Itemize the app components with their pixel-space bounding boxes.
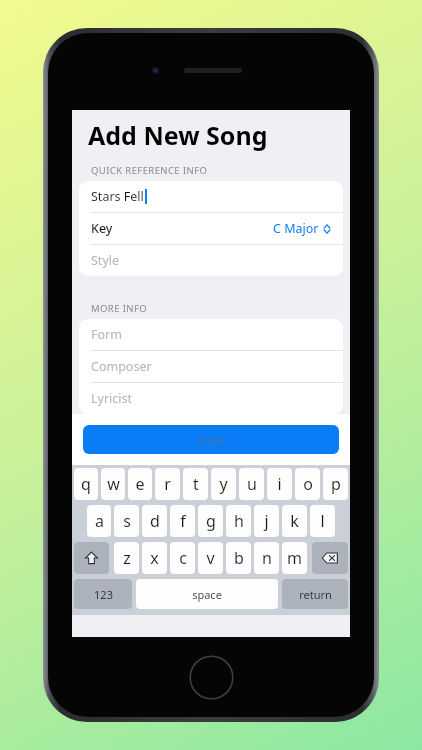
staticText: y <box>219 473 228 495</box>
button[interactable]: 123 <box>74 579 132 609</box>
button[interactable]: Shift <box>74 542 109 574</box>
button[interactable]: l <box>310 505 335 537</box>
button[interactable]: p <box>323 468 348 500</box>
staticText: u <box>247 473 257 495</box>
button[interactable]: g <box>198 505 223 537</box>
staticText: v <box>206 547 215 569</box>
button[interactable]: Style <box>79 245 343 276</box>
staticText: Stars Fell <box>91 188 144 205</box>
button[interactable]: b <box>226 542 251 574</box>
button[interactable]: Lyricist <box>79 383 343 414</box>
staticText: k <box>290 510 299 532</box>
button[interactable]: Composer <box>79 351 343 382</box>
button[interactable]: c <box>170 542 195 574</box>
staticText: l <box>320 510 325 532</box>
button[interactable]: u <box>239 468 264 500</box>
button[interactable]: Save <box>83 425 339 454</box>
button[interactable]: Key <box>79 213 343 244</box>
staticText: q <box>81 473 91 495</box>
button[interactable]: i <box>267 468 292 500</box>
staticText: b <box>234 547 244 569</box>
staticText: Form <box>91 326 122 343</box>
staticText: w <box>107 473 120 495</box>
button[interactable]: y <box>211 468 236 500</box>
staticText: MORE INFO <box>91 302 148 315</box>
other: Select key <box>323 223 331 235</box>
staticText: a <box>95 510 104 532</box>
staticText: Key <box>91 220 113 237</box>
button[interactable]: x <box>142 542 167 574</box>
staticText: m <box>287 547 302 569</box>
staticText: o <box>303 473 313 495</box>
button[interactable]: Backspace <box>312 542 348 574</box>
button[interactable]: e <box>128 468 152 500</box>
staticText: Add New Song <box>88 118 268 152</box>
staticText: r <box>164 473 171 495</box>
staticText: Style <box>91 252 120 269</box>
staticText: n <box>262 547 272 569</box>
button[interactable]: m <box>282 542 307 574</box>
staticText: t <box>193 473 199 495</box>
staticText: space <box>192 587 222 602</box>
button[interactable]: r <box>155 468 180 500</box>
button[interactable]: f <box>170 505 195 537</box>
staticText: c <box>179 547 187 569</box>
staticText: x <box>150 547 159 569</box>
staticText: Composer <box>91 358 152 375</box>
staticText: d <box>150 510 160 532</box>
button[interactable]: d <box>142 505 167 537</box>
button[interactable]: n <box>254 542 279 574</box>
staticText: h <box>234 510 244 532</box>
staticText: p <box>331 473 341 495</box>
button[interactable]: Form <box>79 319 343 350</box>
staticText: e <box>135 473 145 495</box>
staticText: g <box>206 510 216 532</box>
staticText: j <box>264 510 269 532</box>
button[interactable]: k <box>282 505 307 537</box>
button[interactable]: q <box>74 468 98 500</box>
button[interactable]: space <box>136 579 278 609</box>
staticText: 123 <box>94 587 113 602</box>
button[interactable]: j <box>254 505 279 537</box>
button[interactable]: h <box>226 505 251 537</box>
staticText: z <box>123 547 131 569</box>
button[interactable]: Home <box>189 655 234 700</box>
button[interactable]: w <box>101 468 125 500</box>
staticText: i <box>277 473 282 495</box>
button[interactable]: a <box>87 505 111 537</box>
staticText: f <box>180 510 186 532</box>
staticText: s <box>123 510 131 532</box>
staticText: Lyricist <box>91 390 133 407</box>
button[interactable]: v <box>198 542 223 574</box>
button[interactable]: o <box>295 468 320 500</box>
button[interactable]: z <box>114 542 139 574</box>
staticText: C Major <box>273 220 319 237</box>
staticText: QUICK REFERENCE INFO <box>91 164 208 177</box>
staticText: Save <box>197 431 226 449</box>
button[interactable]: t <box>183 468 208 500</box>
button[interactable]: s <box>114 505 139 537</box>
button[interactable]: Stars Fell <box>79 181 343 212</box>
staticText: return <box>299 587 332 602</box>
button[interactable]: return <box>282 579 348 609</box>
